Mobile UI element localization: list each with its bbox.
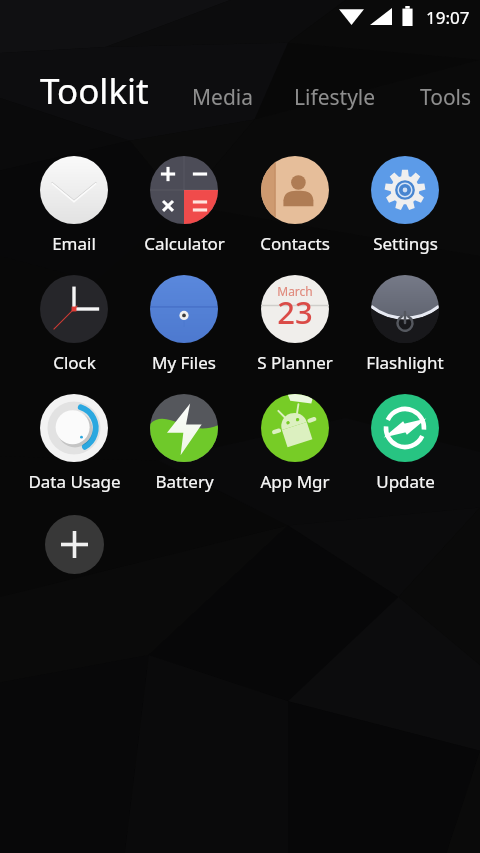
button[interactable]: Settings xyxy=(351,150,459,255)
button[interactable]: Lifestyle xyxy=(280,68,390,127)
button[interactable]: My Files xyxy=(130,269,238,374)
button[interactable]: Flashlight xyxy=(351,269,459,374)
button[interactable]: Email xyxy=(20,150,128,255)
staticText: Tools xyxy=(420,83,472,112)
button[interactable]: Add app xyxy=(45,515,104,574)
button[interactable]: March xyxy=(241,269,349,374)
staticText: App Mgr xyxy=(260,470,330,493)
staticText: Toolkit xyxy=(40,67,149,115)
button[interactable]: Calculator xyxy=(130,150,238,255)
staticText: Clock xyxy=(53,351,96,374)
button[interactable]: Battery xyxy=(130,388,238,493)
staticText: Email xyxy=(52,232,96,255)
staticText: Update xyxy=(376,470,435,493)
button[interactable]: Tools xyxy=(406,68,480,127)
button[interactable]: Toolkit xyxy=(28,55,161,127)
staticText: My Files xyxy=(152,351,216,374)
staticText: Flashlight xyxy=(366,351,444,374)
staticText: Settings xyxy=(373,232,438,255)
staticText: Lifestyle xyxy=(294,83,376,112)
button[interactable]: Contacts xyxy=(241,150,349,255)
button[interactable]: Update xyxy=(351,388,459,493)
button[interactable]: Data Usage xyxy=(20,388,128,493)
staticText: S Planner xyxy=(257,351,333,374)
staticText: March xyxy=(261,283,329,299)
staticText: Media xyxy=(192,83,254,112)
staticText: Battery xyxy=(155,470,214,493)
staticText: 19:07 xyxy=(426,6,470,29)
button[interactable]: Media xyxy=(178,68,268,127)
button[interactable]: Clock xyxy=(20,269,128,374)
staticText: Data Usage xyxy=(28,470,121,493)
staticText: 23 xyxy=(261,291,329,333)
staticText: Calculator xyxy=(144,232,225,255)
button[interactable]: App Mgr xyxy=(241,388,349,493)
staticText: Contacts xyxy=(260,232,330,255)
